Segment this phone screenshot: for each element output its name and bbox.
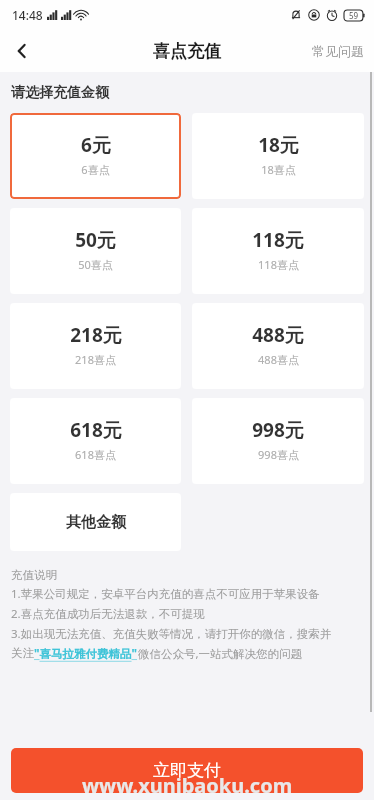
staticText: 其他金额 bbox=[66, 513, 126, 532]
staticText: 3.如出现无法充值、充值失败等情况，请打开你的微信，搜索并 bbox=[11, 626, 332, 642]
button[interactable]: 其他金额 bbox=[10, 493, 181, 551]
staticText: 618元 bbox=[70, 417, 122, 443]
staticText: 立即支付 bbox=[153, 760, 221, 781]
button[interactable]: "喜马拉雅付费精品" bbox=[34, 646, 138, 662]
staticText: 998元 bbox=[252, 417, 304, 443]
button[interactable]: 常见问题 bbox=[302, 35, 374, 67]
staticText: 18喜点 bbox=[261, 162, 296, 177]
staticText: 喜点充值 bbox=[153, 41, 221, 62]
staticText: 488元 bbox=[252, 322, 304, 348]
button[interactable]: 488元 bbox=[192, 303, 364, 389]
staticText: 14:48 bbox=[12, 7, 43, 23]
button[interactable]: 118元 bbox=[192, 208, 364, 294]
button[interactable]: 998元 bbox=[192, 398, 364, 484]
button[interactable]: 6元 bbox=[10, 113, 181, 199]
button[interactable]: 218元 bbox=[10, 303, 181, 389]
staticText: 998喜点 bbox=[258, 447, 299, 462]
staticText: 关注 bbox=[11, 646, 34, 660]
staticText: www.xunibaoku.com bbox=[82, 772, 293, 799]
staticText: 6喜点 bbox=[81, 162, 110, 177]
button[interactable]: 50元 bbox=[10, 208, 181, 294]
staticText: 218喜点 bbox=[75, 352, 116, 367]
staticText: 18元 bbox=[258, 132, 299, 158]
staticText: 2.喜点充值成功后无法退款，不可提现 bbox=[11, 606, 205, 622]
staticText: 50喜点 bbox=[78, 257, 113, 272]
button[interactable]: 618元 bbox=[10, 398, 181, 484]
staticText: 488喜点 bbox=[258, 352, 299, 367]
staticText: 618喜点 bbox=[75, 447, 116, 462]
staticText: 6元 bbox=[81, 132, 111, 158]
staticText: 充值说明 bbox=[11, 568, 57, 582]
staticText: 请选择充值金额 bbox=[11, 84, 109, 102]
staticText: 微信公众号,一站式解决您的问题 bbox=[138, 646, 303, 662]
button[interactable]: 18元 bbox=[192, 113, 364, 199]
staticText: 118元 bbox=[252, 227, 304, 253]
staticText: 常见问题 bbox=[312, 43, 364, 59]
button[interactable]: 立即支付 bbox=[11, 748, 363, 793]
staticText: 218元 bbox=[70, 322, 122, 348]
button[interactable]: 返回 bbox=[0, 30, 44, 72]
staticText: 59 bbox=[349, 10, 359, 21]
staticText: 50元 bbox=[75, 227, 116, 253]
staticText: 1.苹果公司规定，安卓平台内充值的喜点不可应用于苹果设备 bbox=[11, 586, 320, 602]
staticText: 118喜点 bbox=[258, 257, 299, 272]
